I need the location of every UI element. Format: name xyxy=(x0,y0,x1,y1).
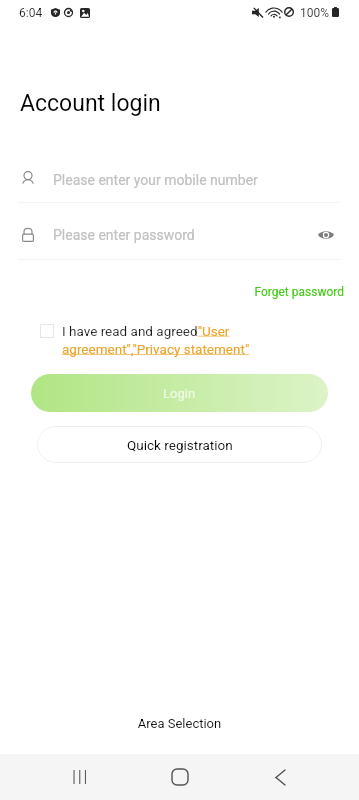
button[interactable]: Please enter password xyxy=(0,216,359,258)
button[interactable]: Home xyxy=(157,754,203,800)
button[interactable]: I have read and agreed"User agreement","… xyxy=(62,323,258,357)
button[interactable]: Show password xyxy=(308,222,341,248)
button[interactable]: Recent apps xyxy=(57,754,103,800)
staticText: Account login xyxy=(20,90,161,117)
button[interactable]: Agree to terms xyxy=(40,324,54,338)
staticText: Please enter password xyxy=(53,227,195,243)
staticText: 6:04 xyxy=(19,6,43,20)
button[interactable]: Please enter your mobile number xyxy=(0,160,359,202)
staticText: Quick registration xyxy=(127,437,233,453)
button[interactable]: Login xyxy=(31,374,328,412)
staticText: Please enter your mobile number xyxy=(53,172,258,188)
staticText: 100% xyxy=(300,6,330,20)
button[interactable]: Quick registration xyxy=(37,426,322,463)
button[interactable]: Forget password xyxy=(0,285,344,299)
button[interactable]: Area Selection xyxy=(0,716,359,731)
staticText: Login xyxy=(163,386,196,401)
button[interactable]: Back xyxy=(257,754,303,800)
